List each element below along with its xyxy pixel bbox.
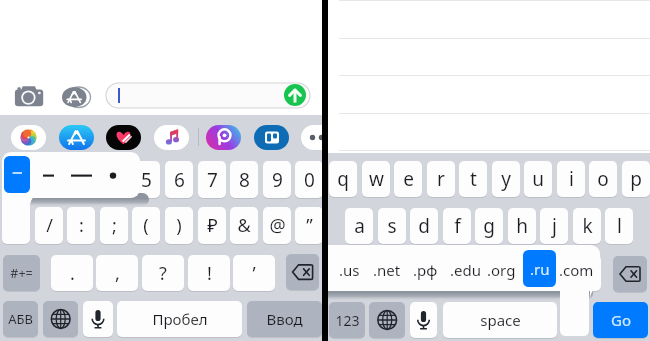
button[interactable]: j xyxy=(540,208,568,245)
button[interactable]: 6 xyxy=(165,161,193,199)
button[interactable]: Photos xyxy=(11,125,46,150)
button[interactable]: g xyxy=(475,208,503,245)
button[interactable]: 5 xyxy=(132,161,160,199)
button[interactable]: ” xyxy=(295,207,322,245)
button[interactable]: @ xyxy=(263,207,291,245)
button[interactable]: Shift xyxy=(329,255,367,292)
button[interactable]: 3 xyxy=(67,161,95,199)
button[interactable]: h xyxy=(508,208,536,245)
button[interactable]: o xyxy=(589,161,617,199)
button[interactable]: Send xyxy=(284,84,306,106)
button[interactable]: АБВ xyxy=(3,301,38,338)
button[interactable]: y xyxy=(492,161,520,199)
button[interactable]: ) xyxy=(165,207,193,245)
button[interactable]: Picsart xyxy=(206,125,241,150)
button[interactable]: - xyxy=(2,207,30,245)
button[interactable]: App Store xyxy=(59,125,94,150)
button[interactable]: r xyxy=(427,161,455,199)
staticText: .edu xyxy=(450,260,481,280)
staticText: 123 xyxy=(335,311,360,330)
button[interactable]: v xyxy=(475,255,503,292)
button[interactable]: ( xyxy=(132,207,160,245)
button[interactable]: p xyxy=(622,161,650,199)
button[interactable]: space xyxy=(443,302,557,339)
button[interactable]: n xyxy=(540,255,568,292)
button[interactable]: : xyxy=(67,207,95,245)
button[interactable]: 9 xyxy=(263,161,291,199)
button[interactable] xyxy=(30,152,140,197)
button[interactable]: Dictation xyxy=(83,301,113,338)
button[interactable]: ; xyxy=(100,207,128,245)
button[interactable]: .org xyxy=(479,259,523,281)
button[interactable]: k xyxy=(573,208,601,245)
button[interactable]: Ввод xyxy=(247,301,322,338)
staticText: Ввод xyxy=(266,309,303,329)
button[interactable]: Пробел xyxy=(117,301,242,338)
button[interactable]: ? xyxy=(142,255,184,292)
button[interactable]: u xyxy=(524,161,552,199)
button[interactable]: Next keyboard xyxy=(369,302,405,339)
staticText: ; xyxy=(112,213,117,238)
button[interactable]: .com xyxy=(554,259,598,281)
button[interactable]: & xyxy=(230,207,258,245)
button[interactable]: Dictation xyxy=(410,302,437,339)
button[interactable]: 2 xyxy=(35,161,63,199)
button[interactable]: i xyxy=(557,161,585,199)
button[interactable]: l xyxy=(605,208,633,245)
staticText: b xyxy=(516,260,528,286)
button[interactable]: .net xyxy=(365,259,409,281)
button[interactable]: #+= xyxy=(3,255,40,292)
button[interactable]: Trello xyxy=(254,125,289,150)
staticText: m xyxy=(578,260,596,286)
button[interactable]: b xyxy=(508,255,536,292)
staticText: g xyxy=(483,213,495,239)
button[interactable]: f xyxy=(443,208,471,245)
button[interactable]: a xyxy=(345,208,373,245)
button[interactable]: . xyxy=(51,255,93,292)
button[interactable]: 123 xyxy=(329,302,365,339)
button[interactable]: 1 xyxy=(2,161,30,199)
button[interactable]: d xyxy=(410,208,438,245)
button[interactable]: Backspace xyxy=(613,256,647,293)
staticText: 8 xyxy=(239,167,250,193)
button[interactable]: Music xyxy=(154,125,189,150)
button[interactable]: z xyxy=(378,255,406,292)
button[interactable]: 0 xyxy=(295,161,322,199)
button[interactable]: 7 xyxy=(198,161,226,199)
button[interactable]: w xyxy=(362,161,390,199)
button[interactable]: / xyxy=(35,207,63,245)
button[interactable]: .edu xyxy=(443,259,487,281)
button[interactable]: q xyxy=(329,161,357,199)
button[interactable]: ’ xyxy=(233,255,275,292)
button[interactable] xyxy=(106,83,310,108)
button[interactable]: ! xyxy=(188,255,230,292)
button[interactable]: t xyxy=(459,161,487,199)
staticText: ! xyxy=(207,261,212,286)
button[interactable]: 4 xyxy=(100,161,128,199)
button[interactable]: .pф xyxy=(403,259,447,281)
button[interactable]: x xyxy=(410,255,438,292)
button[interactable] xyxy=(4,156,30,193)
button[interactable]: Camera xyxy=(14,85,44,107)
button[interactable]: .us xyxy=(328,259,371,281)
button[interactable]: Go xyxy=(593,302,648,339)
button[interactable]: App Store xyxy=(62,87,87,107)
button[interactable]: ₽ xyxy=(198,207,226,245)
staticText: 2 xyxy=(44,167,55,193)
button[interactable]: Fitness xyxy=(106,125,141,150)
button[interactable]: m xyxy=(573,255,601,292)
staticText: .org xyxy=(487,260,516,280)
button[interactable]: c xyxy=(443,255,471,292)
button[interactable]: Next keyboard xyxy=(43,301,78,338)
button[interactable]: s xyxy=(378,208,406,245)
button[interactable]: More apps xyxy=(301,125,322,150)
staticText: / xyxy=(46,213,53,238)
button[interactable]: 8 xyxy=(230,161,258,199)
button[interactable]: e xyxy=(394,161,422,199)
button[interactable]: Backspace xyxy=(286,254,319,292)
staticText: .us xyxy=(339,260,360,280)
button[interactable]: , xyxy=(96,255,138,292)
staticText: ( xyxy=(143,213,149,238)
staticText: 7 xyxy=(207,167,218,193)
button[interactable]: .ru xyxy=(523,250,556,287)
